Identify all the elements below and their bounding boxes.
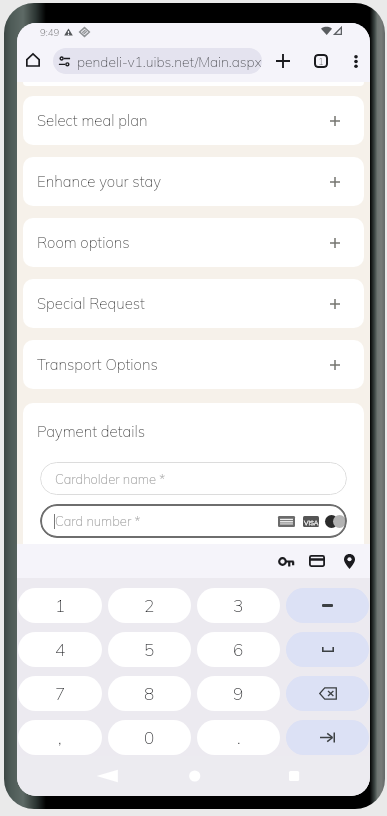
staticText: Room options	[37, 233, 130, 252]
button[interactable]: 0	[108, 720, 191, 755]
staticText: 0	[144, 727, 155, 748]
button[interactable]: 3	[197, 588, 280, 623]
button[interactable]: New tab	[267, 45, 299, 77]
button[interactable]: 7	[18, 676, 102, 711]
button[interactable]: Passwords	[269, 545, 301, 577]
staticText: 8	[144, 683, 155, 704]
staticText: 6	[233, 639, 244, 660]
staticText: 2	[144, 595, 155, 616]
staticText: Select meal plan	[37, 111, 148, 130]
staticText: 9	[233, 683, 244, 704]
button[interactable]: Transport Options	[23, 340, 364, 389]
staticText: 3	[233, 595, 244, 616]
staticText: Transport Options	[37, 355, 158, 374]
button[interactable]: Card number *	[40, 504, 347, 538]
button[interactable]: Minus	[286, 588, 369, 623]
staticText: Enhance your stay	[37, 172, 162, 191]
button[interactable]: Tabs	[305, 45, 337, 77]
staticText: .	[237, 727, 241, 748]
staticText: 1	[55, 595, 66, 616]
staticText: 9:49	[40, 26, 60, 38]
staticText: Card number *	[55, 513, 141, 529]
button[interactable]: 6	[197, 632, 280, 667]
button[interactable]: Room options	[23, 218, 364, 267]
button[interactable]: 5	[108, 632, 191, 667]
button[interactable]: Addresses	[333, 545, 365, 577]
button[interactable]: ,	[18, 720, 102, 755]
button[interactable]: 1	[18, 588, 102, 623]
button[interactable]: Backspace	[286, 676, 369, 711]
staticText: 4	[55, 639, 66, 660]
button[interactable]: Enter	[286, 720, 369, 755]
button[interactable]: Select meal plan	[23, 96, 364, 145]
button[interactable]: Home	[18, 45, 48, 75]
button[interactable]: Special Request	[23, 279, 364, 328]
staticText: 1	[318, 55, 324, 67]
staticText: 5	[144, 639, 155, 660]
staticText: pendeli-v1.uibs.net/Main.aspx?mo	[77, 53, 262, 70]
button[interactable]: pendeli-v1.uibs.net/Main.aspx?mo	[53, 48, 262, 74]
button[interactable]: 8	[108, 676, 191, 711]
staticText: Cardholder name *	[55, 471, 166, 487]
button[interactable]: 2	[108, 588, 191, 623]
button[interactable]: .	[197, 720, 280, 755]
staticText: Special Request	[37, 294, 145, 313]
button[interactable]: Space	[286, 632, 369, 667]
button[interactable]: Payment methods	[301, 545, 333, 577]
button[interactable]: More options	[340, 45, 370, 77]
staticText: ,	[58, 727, 62, 748]
staticText: 7	[55, 683, 66, 704]
button[interactable]: Enhance your stay	[23, 157, 364, 206]
button[interactable]: 4	[18, 632, 102, 667]
button[interactable]: Cardholder name *	[40, 462, 347, 495]
staticText: VISA	[304, 518, 319, 526]
staticText: Payment details	[37, 422, 146, 441]
button[interactable]: 9	[197, 676, 280, 711]
